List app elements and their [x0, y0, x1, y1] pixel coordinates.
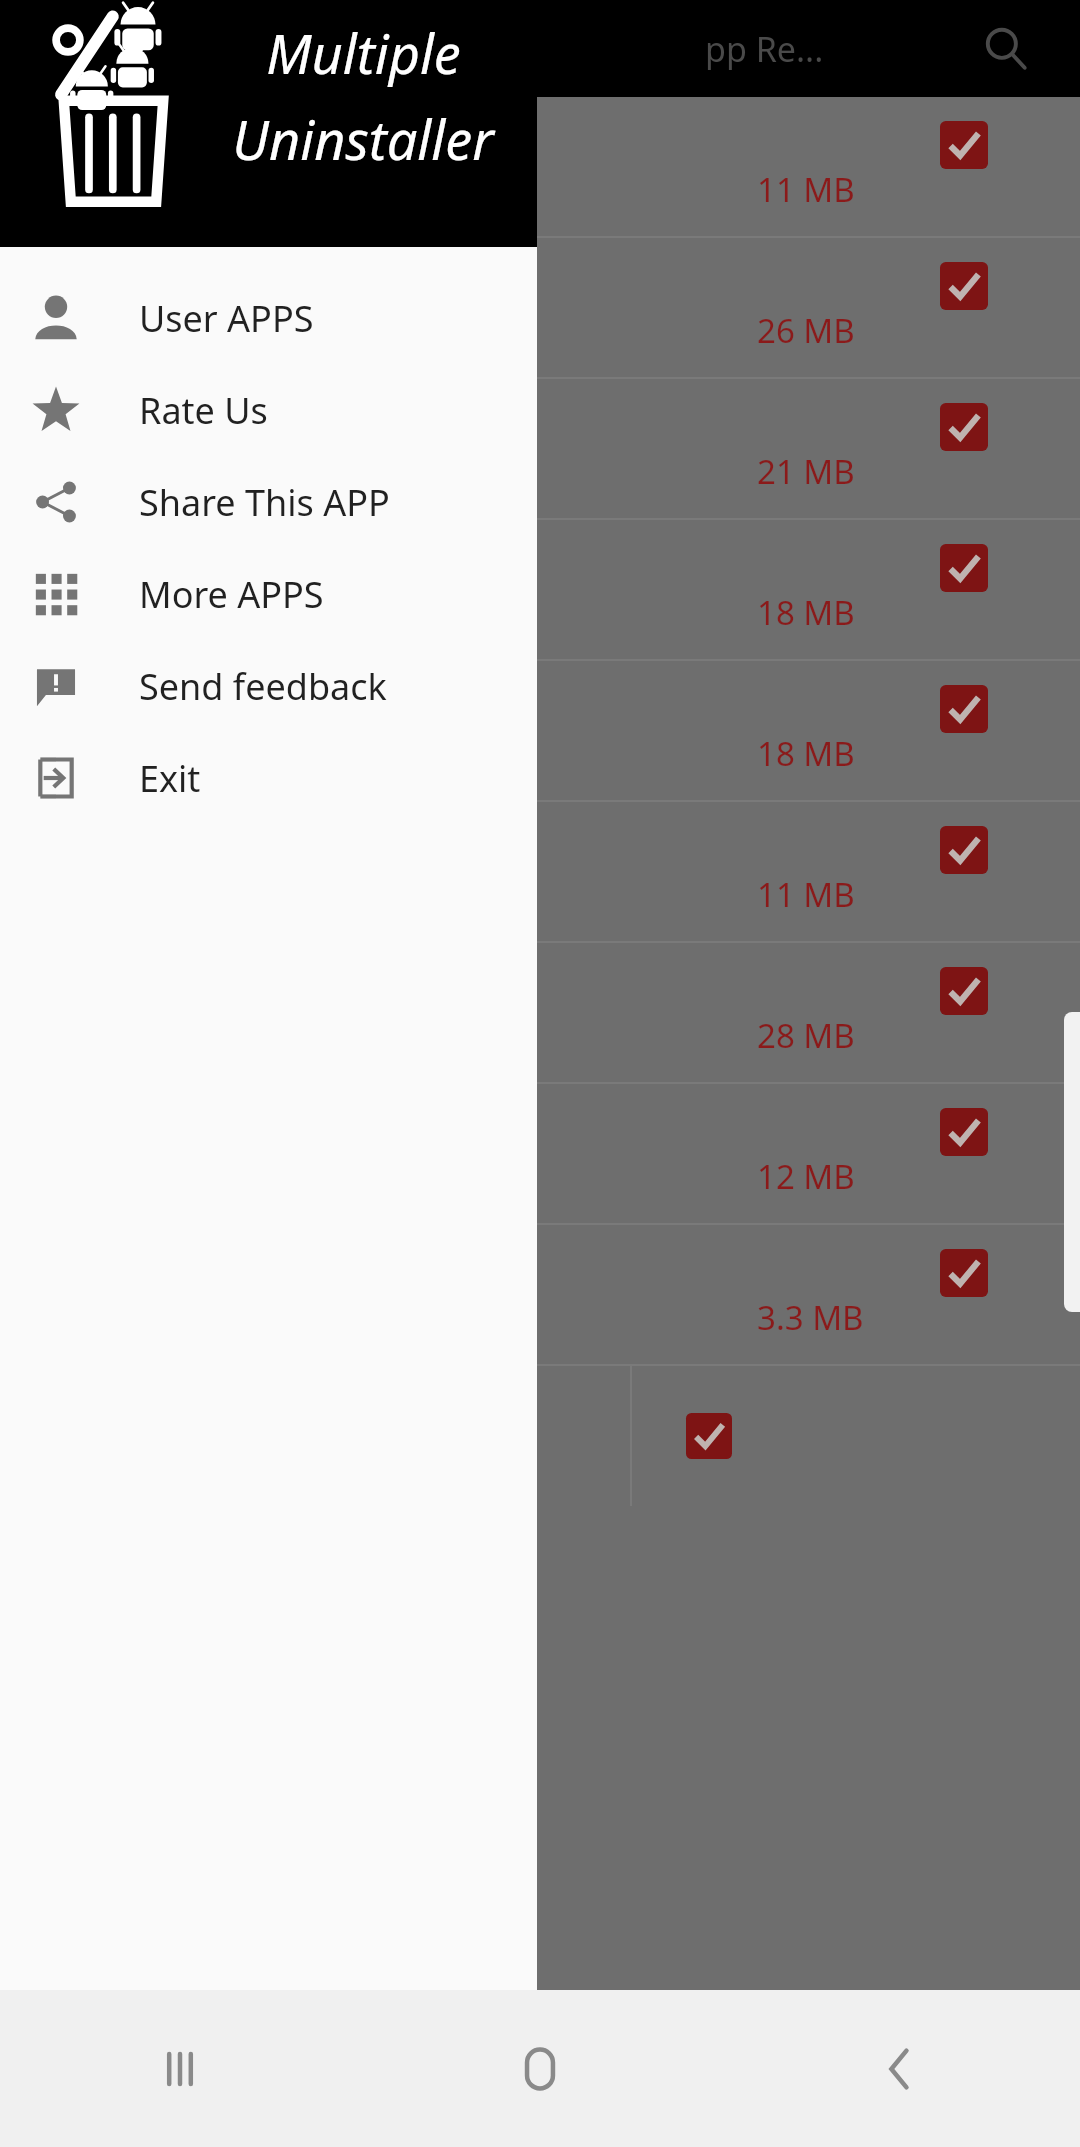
button[interactable]: 11 MB — [0, 97, 1080, 236]
staticText: 18 MB — [757, 731, 855, 776]
button[interactable]: 21 MB — [0, 379, 1080, 518]
staticText: Send feedback — [139, 662, 387, 711]
staticText: Rate Us — [139, 386, 268, 435]
button[interactable]: Share This APP — [0, 456, 537, 548]
staticText: 12 MB — [757, 1154, 855, 1199]
button[interactable]: Back — [720, 1990, 1080, 2147]
staticText: User APPS — [139, 294, 314, 343]
button[interactable]: User APPS — [0, 272, 537, 364]
staticText: 11 MB — [757, 167, 855, 212]
button[interactable]: 11 MB — [0, 802, 1080, 941]
staticText: 3.3 MB — [757, 1295, 864, 1340]
staticText: 26 MB — [757, 308, 855, 353]
button[interactable]: 3.3 MB — [0, 1225, 1080, 1364]
button[interactable]: 18 MB — [0, 661, 1080, 800]
staticText: Uninstaller — [232, 102, 494, 176]
staticText: 11 MB — [757, 872, 855, 917]
button[interactable]: 26 MB — [0, 238, 1080, 377]
button[interactable]: Recent apps — [0, 1990, 360, 2147]
button[interactable]: More APPS — [0, 548, 537, 640]
staticText: Exit — [139, 754, 201, 803]
button[interactable]: Home — [360, 1990, 720, 2147]
button[interactable]: Send feedback — [0, 640, 537, 732]
button[interactable]: 18 MB — [0, 520, 1080, 659]
staticText: More APPS — [139, 570, 324, 619]
staticText: Multiple — [266, 16, 461, 90]
button[interactable]: 28 MB — [0, 943, 1080, 1082]
staticText: 18 MB — [757, 590, 855, 635]
button[interactable]: Search — [970, 13, 1042, 85]
staticText: Share This APP — [139, 478, 390, 527]
staticText: 21 MB — [757, 449, 855, 494]
button[interactable]: 12 MB — [0, 1084, 1080, 1223]
staticText: pp Re... — [705, 26, 824, 72]
staticText: 28 MB — [757, 1013, 855, 1058]
button[interactable]: Exit — [0, 732, 537, 824]
button[interactable]: Rate Us — [0, 364, 537, 456]
